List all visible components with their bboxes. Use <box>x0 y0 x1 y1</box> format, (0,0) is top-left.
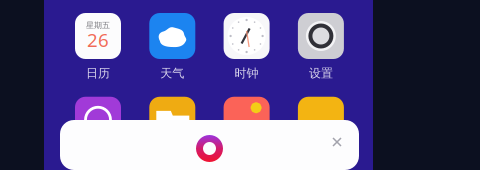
staticText: 星期五 <box>86 20 110 30</box>
staticText: 26 <box>87 27 109 52</box>
button[interactable]: 时钟 <box>224 13 270 81</box>
staticText: 日历 <box>86 66 110 81</box>
staticText: 时钟 <box>235 66 259 81</box>
button[interactable]: 设置 <box>298 13 344 81</box>
button[interactable]: 星期五 <box>75 13 121 81</box>
staticText: 设置 <box>309 66 333 81</box>
button[interactable]: Instagram <box>75 97 121 143</box>
button[interactable]: Notes <box>149 97 195 143</box>
button[interactable]: 天气 <box>149 13 195 81</box>
button[interactable]: Photos <box>224 97 270 143</box>
staticText: 天气 <box>160 66 184 81</box>
button[interactable]: Reminders <box>298 97 344 143</box>
button[interactable]: Close <box>328 133 346 151</box>
